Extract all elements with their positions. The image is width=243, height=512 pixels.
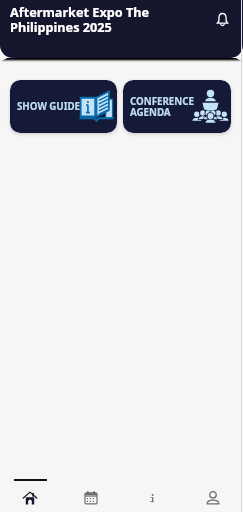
button[interactable]: Home [0,468,60,512]
button[interactable]: SHOW GUIDE [10,80,117,133]
button[interactable]: Notifications [210,7,234,31]
button[interactable]: Agenda [60,468,121,512]
staticText: CONFERENCE AGENDA [130,95,194,119]
button[interactable]: CONFERENCE AGENDA [123,80,231,133]
staticText: Aftermarket Expo The Philippines 2025 [10,3,150,36]
button[interactable]: Info [121,468,182,512]
button[interactable]: Profile [182,468,243,512]
staticText: SHOW GUIDE [17,100,80,113]
